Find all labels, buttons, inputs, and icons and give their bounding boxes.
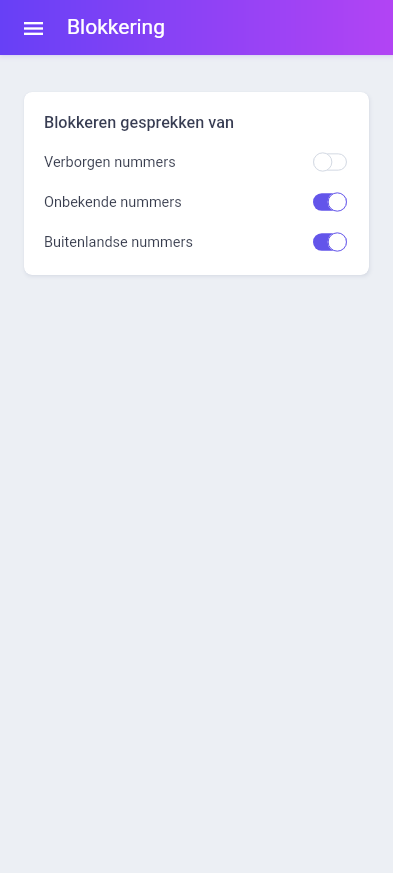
staticText: Verborgen nummers xyxy=(44,154,176,171)
button[interactable]: Buitenlandse nummers xyxy=(24,222,369,262)
staticText: Onbekende nummers xyxy=(44,194,182,211)
staticText: Buitenlandse nummers xyxy=(44,234,193,251)
button[interactable]: Verborgen nummers xyxy=(24,142,369,182)
staticText: Blokkering xyxy=(67,15,165,40)
button[interactable]: Open navigation menu xyxy=(12,7,54,49)
staticText: Blokkeren gesprekken van xyxy=(44,113,234,132)
button[interactable]: Onbekende nummers xyxy=(24,182,369,222)
